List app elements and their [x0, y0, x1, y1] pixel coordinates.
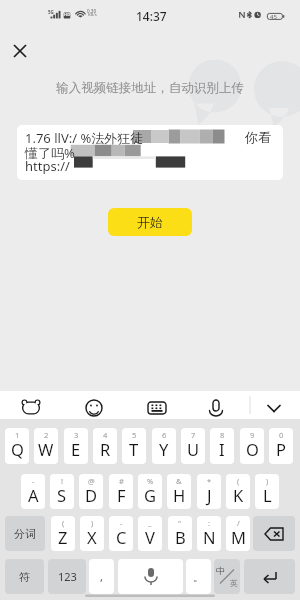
- staticText: 中: [216, 565, 225, 576]
- staticText: 0.30: [87, 8, 97, 14]
- button[interactable]: Keyboard: [143, 394, 171, 422]
- button[interactable]: 5: [122, 428, 146, 464]
- staticText: 开始: [137, 214, 163, 230]
- button[interactable]: !: [50, 474, 74, 509]
- staticText: D: [85, 484, 98, 506]
- button[interactable]: %: [138, 474, 162, 509]
- button[interactable]: *: [197, 474, 221, 509]
- staticText: 符: [19, 570, 30, 584]
- button[interactable]: &: [167, 474, 191, 509]
- button[interactable]: 6: [152, 428, 176, 464]
- button[interactable]: Space: [118, 559, 183, 594]
- staticText: #: [119, 476, 124, 486]
- staticText: !: [61, 476, 64, 486]
- staticText: R: [100, 438, 111, 460]
- button[interactable]: /: [226, 516, 250, 551]
- staticText: 0: [279, 430, 284, 440]
- button[interactable]: 。: [186, 559, 211, 594]
- staticText: T: [129, 438, 139, 460]
- button[interactable]: 符: [5, 559, 44, 594]
- staticText: V: [145, 526, 155, 548]
- staticText: &: [176, 476, 182, 486]
- staticText: K: [233, 484, 244, 506]
- staticText: A: [28, 484, 39, 506]
- button[interactable]: ): [80, 516, 104, 551]
- staticText: 8: [220, 430, 225, 440]
- button[interactable]: 开始: [108, 208, 192, 236]
- staticText: ): [91, 518, 94, 528]
- staticText: (: [62, 518, 65, 528]
- button[interactable]: ,: [89, 559, 114, 594]
- staticText: 分词: [14, 527, 36, 541]
- button[interactable]: 2: [34, 428, 58, 464]
- button[interactable]: Voice input: [202, 394, 230, 422]
- button[interactable]: 中: [214, 559, 240, 594]
- button[interactable]: ): [255, 474, 279, 509]
- staticText: ": [178, 518, 182, 528]
- button[interactable]: Hide keyboard: [260, 394, 288, 422]
- button[interactable]: Baidu input: [17, 394, 45, 422]
- staticText: 9: [250, 430, 255, 440]
- staticText: 14:37: [136, 8, 167, 24]
- staticText: C: [116, 526, 127, 548]
- staticText: Y: [159, 438, 169, 460]
- staticText: 1: [15, 430, 20, 440]
- staticText: U: [187, 438, 200, 460]
- staticText: W: [38, 438, 54, 460]
- staticText: 英: [230, 578, 238, 588]
- button[interactable]: Close: [6, 37, 34, 65]
- staticText: %: [147, 476, 154, 486]
- staticText: 7: [191, 430, 196, 440]
- staticText: KB/s: [88, 12, 97, 18]
- staticText: O: [246, 438, 259, 460]
- staticText: 2: [44, 430, 49, 440]
- staticText: 懂了吗%: [25, 144, 75, 162]
- button[interactable]: 1.76 llV:/ %法外狂徒: [17, 125, 283, 180]
- staticText: 123: [58, 569, 77, 584]
- staticText: 你看: [245, 129, 271, 145]
- staticText: B: [175, 526, 186, 548]
- staticText: F: [117, 484, 126, 506]
- staticText: I: [219, 438, 225, 460]
- staticText: https://: [25, 157, 70, 175]
- button[interactable]: #: [109, 474, 133, 509]
- staticText: 5: [132, 430, 137, 440]
- staticText: Q: [11, 438, 24, 460]
- button[interactable]: 3: [64, 428, 88, 464]
- staticText: _: [148, 518, 152, 528]
- staticText: N: [203, 526, 216, 548]
- staticText: (: [237, 476, 240, 486]
- staticText: P: [276, 438, 286, 460]
- staticText: H: [173, 484, 186, 506]
- button[interactable]: ": [168, 516, 192, 551]
- staticText: 5G: [48, 9, 54, 15]
- staticText: @: [88, 476, 95, 486]
- button[interactable]: Backspace: [253, 516, 295, 551]
- button[interactable]: 123: [48, 559, 86, 594]
- button[interactable]: (: [51, 516, 75, 551]
- button[interactable]: 9: [240, 428, 264, 464]
- button[interactable]: 分词: [5, 516, 45, 551]
- button[interactable]: 0: [269, 428, 293, 464]
- button[interactable]: @: [79, 474, 103, 509]
- button[interactable]: :: [197, 516, 221, 551]
- staticText: M: [231, 526, 246, 548]
- button[interactable]: (: [226, 474, 250, 509]
- button[interactable]: -: [109, 516, 133, 551]
- button[interactable]: 1: [5, 428, 29, 464]
- staticText: ,: [100, 569, 103, 584]
- button[interactable]: 8: [210, 428, 234, 464]
- staticText: 1.76 llV:/ %法外狂徒: [25, 129, 144, 147]
- button[interactable]: Enter: [244, 559, 295, 594]
- button[interactable]: Emoji: [80, 394, 108, 422]
- button[interactable]: -: [21, 474, 45, 509]
- staticText: *: [207, 476, 212, 486]
- button[interactable]: 7: [181, 428, 205, 464]
- staticText: :: [208, 518, 211, 528]
- staticText: 6: [162, 430, 167, 440]
- button[interactable]: _: [138, 516, 162, 551]
- staticText: S: [57, 484, 67, 506]
- staticText: G: [144, 484, 157, 506]
- button[interactable]: 4: [93, 428, 117, 464]
- staticText: -: [32, 476, 35, 486]
